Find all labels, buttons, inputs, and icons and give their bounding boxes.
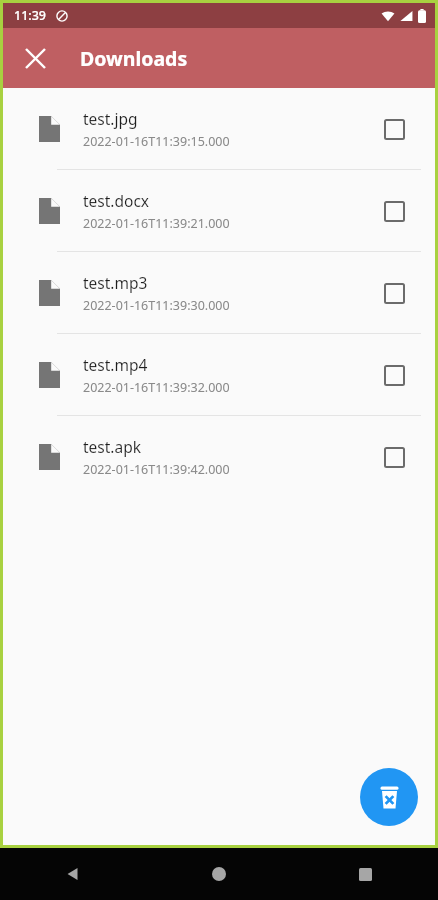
button[interactable]: test.jpg — [3, 88, 435, 169]
button[interactable]: Delete selected — [360, 768, 418, 826]
button[interactable]: test.docx — [3, 170, 435, 251]
staticText: test.mp4 — [83, 354, 148, 375]
staticText: 2022-01-16T11:39:15.000 — [83, 133, 230, 150]
button[interactable]: Home — [146, 848, 292, 900]
staticText: test.jpg — [83, 108, 138, 129]
button[interactable]: Select test.docx — [375, 192, 413, 230]
staticText: 2022-01-16T11:39:42.000 — [83, 461, 230, 478]
button[interactable]: test.apk — [3, 416, 435, 497]
staticText: 2022-01-16T11:39:32.000 — [83, 379, 230, 396]
staticText: test.mp3 — [83, 272, 148, 293]
button[interactable]: Select test.jpg — [375, 110, 413, 148]
staticText: 2022-01-16T11:39:21.000 — [83, 215, 230, 232]
staticText: 11:39 — [14, 7, 47, 24]
button[interactable]: Back — [0, 848, 146, 900]
staticText: Downloads — [80, 45, 188, 72]
button[interactable]: Select test.mp3 — [375, 274, 413, 312]
staticText: 2022-01-16T11:39:30.000 — [83, 297, 230, 314]
staticText: test.docx — [83, 190, 150, 211]
button[interactable]: test.mp3 — [3, 252, 435, 333]
staticText: test.apk — [83, 436, 142, 457]
button[interactable]: Close — [12, 35, 58, 81]
button[interactable]: Select test.mp4 — [375, 356, 413, 394]
button[interactable]: test.mp4 — [3, 334, 435, 415]
button[interactable]: Select test.apk — [375, 438, 413, 476]
button[interactable]: Recents — [292, 848, 438, 900]
